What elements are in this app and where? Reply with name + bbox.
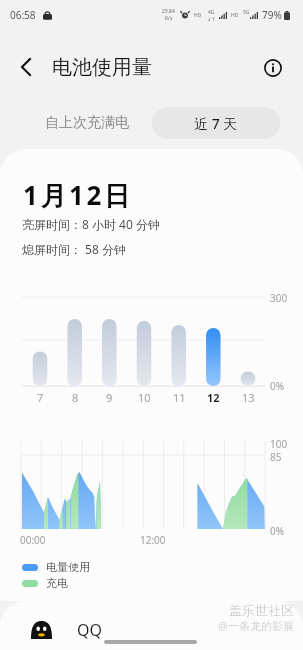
staticText: 0% — [270, 524, 285, 538]
staticText: 4G — [208, 9, 215, 16]
button[interactable]: QQ — [0, 611, 303, 649]
staticText: 00:00 — [20, 533, 46, 547]
staticText: 100 — [270, 437, 288, 451]
staticText: 电池使用量 — [52, 55, 152, 80]
staticText: 8 — [72, 390, 79, 405]
button[interactable]: 自上次充满电 — [23, 107, 151, 139]
button[interactable]: Info — [258, 53, 287, 82]
staticText: 12 — [207, 390, 220, 405]
staticText: 自上次充满电 — [45, 114, 129, 132]
staticText: 盖乐世社区 — [229, 602, 294, 618]
staticText: 9 — [106, 390, 113, 405]
staticText: 13 — [242, 390, 255, 405]
button[interactable]: 电量使用 — [22, 560, 90, 574]
staticText: 06:58 — [10, 8, 36, 22]
staticText: ↓↑ — [207, 16, 216, 22]
staticText: QQ — [77, 619, 102, 641]
staticText: 近 7 天 — [194, 114, 238, 133]
staticText: 85 — [270, 450, 282, 464]
button[interactable]: 近 7 天 — [152, 107, 280, 139]
staticText: 10 — [138, 390, 151, 405]
staticText: 11 — [173, 390, 186, 405]
staticText: 12:00 — [140, 533, 166, 547]
staticText: 电量使用 — [46, 560, 90, 574]
staticText: 亮屏时间：8 小时 40 分钟 — [22, 216, 160, 232]
staticText: 300 — [270, 291, 288, 305]
staticText: HD — [194, 12, 202, 19]
staticText: 0% — [270, 379, 285, 393]
staticText: 充电 — [46, 576, 68, 590]
staticText: 79% — [262, 8, 282, 22]
staticText: 熄屏时间： 58 分钟 — [22, 241, 126, 257]
staticText: 5G — [243, 9, 250, 16]
staticText: K/s — [165, 15, 173, 22]
staticText: 7 — [37, 390, 44, 405]
button[interactable]: 充电 — [22, 576, 68, 590]
staticText: HD — [231, 12, 239, 19]
staticText: @一条龙的影展 — [218, 618, 294, 633]
button[interactable]: Back — [11, 49, 40, 85]
staticText: 1月12日 — [23, 177, 133, 213]
staticText: 23.84 — [162, 8, 175, 15]
